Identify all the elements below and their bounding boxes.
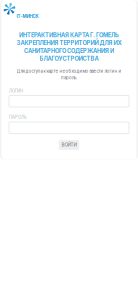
staticText: пароль. bbox=[61, 75, 77, 80]
button[interactable]: ВОЙТИ bbox=[59, 140, 79, 150]
staticText: Для доступа к карте необходимо ввести ло… bbox=[16, 68, 121, 74]
staticText: САНИТАРНОГО СОДЕРЖАНИЯ И bbox=[24, 47, 114, 54]
staticText: ИНТЕРАКТИВНАЯ КАРТА Г. ГОМЕЛЬ bbox=[19, 32, 119, 39]
staticText: ПАРОЛЬ bbox=[9, 115, 27, 120]
staticText: БЛАГОУСТРОЙСТВА bbox=[39, 55, 98, 62]
staticText: ЗАКРЕПЛЕНИЯ ТЕРРИТОРИЙ ДЛЯ ИХ bbox=[16, 39, 121, 46]
staticText: ЛОГИН bbox=[9, 89, 23, 94]
staticText: ВОЙТИ bbox=[61, 142, 76, 148]
staticText: IT-МИНСК bbox=[16, 14, 38, 19]
